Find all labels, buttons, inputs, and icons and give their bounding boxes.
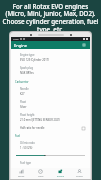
button[interactable]: Needle xyxy=(11,85,90,98)
staticText: 12:45 xyxy=(13,38,19,41)
staticText: Result xyxy=(18,175,25,178)
staticText: Oil mix ratio xyxy=(20,141,35,145)
button[interactable]: Float height xyxy=(11,111,90,124)
staticText: Engine type xyxy=(20,53,35,57)
staticText: 1 : 50 (2%) xyxy=(20,146,33,150)
button[interactable]: Result xyxy=(12,168,31,179)
staticText: NGK BR9es xyxy=(20,71,34,75)
button[interactable]: Fuel type xyxy=(11,159,90,168)
button[interactable]: Half ratio for needle xyxy=(11,124,90,132)
staticText: Carburetor xyxy=(15,80,29,84)
staticText: Track xyxy=(38,175,44,178)
button[interactable]: Float xyxy=(11,98,90,111)
staticText: Spark plug xyxy=(20,66,34,70)
button[interactable]: Engine xyxy=(14,43,28,48)
button[interactable]: Engine type xyxy=(11,51,90,64)
staticText: Needle xyxy=(20,87,29,91)
staticText: K27 xyxy=(20,92,25,96)
staticText: Profile xyxy=(76,175,83,178)
button[interactable]: Oil mix ratio xyxy=(11,139,90,152)
button[interactable]: Spark plug xyxy=(11,64,90,77)
staticText: Half ratio for needle xyxy=(20,126,45,130)
staticText: Float height xyxy=(20,113,35,117)
button[interactable]: Profile xyxy=(70,168,89,179)
button[interactable] xyxy=(11,152,90,159)
staticText: For all Rotax EVO engines (Micro, Mini, … xyxy=(2,2,99,34)
staticText: Engine xyxy=(57,175,65,178)
button[interactable]: Track xyxy=(31,168,50,179)
staticText: Fuel xyxy=(15,134,21,138)
button[interactable]: Engine xyxy=(51,168,70,179)
staticText: Fuel type xyxy=(20,161,32,165)
staticText: 21.0 mm (JETTING SENSOR 2021) xyxy=(20,118,61,122)
staticText: Float xyxy=(20,100,26,104)
staticText: EVO 125 (Cylinder 2017) xyxy=(20,58,49,62)
staticText: Silver xyxy=(20,105,27,109)
button[interactable]: Settings xyxy=(81,42,87,48)
